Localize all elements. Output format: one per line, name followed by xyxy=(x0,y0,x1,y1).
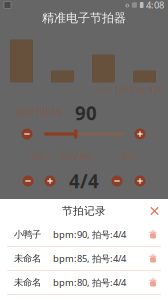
staticText: 小节: 109 xyxy=(94,85,129,95)
staticText: bpm:85, 拍号:4/4 xyxy=(53,252,126,265)
button[interactable]: Increase xyxy=(134,128,145,139)
staticText: 精准电子节拍器 xyxy=(42,11,126,25)
button[interactable]: Decrease xyxy=(22,175,33,186)
button[interactable]: 未命名 xyxy=(0,247,168,270)
staticText: 4:08 xyxy=(146,0,164,11)
staticText: 90 xyxy=(75,101,97,125)
staticText: 小鸭子 xyxy=(14,229,41,240)
button[interactable]: 未命名 xyxy=(0,271,168,294)
staticText: 节拍: 438 xyxy=(128,85,163,95)
staticText: 节拍记录 xyxy=(62,204,106,217)
staticText: 节拍 xyxy=(29,152,45,162)
button[interactable]: Close xyxy=(150,206,159,215)
button[interactable]: Decrease xyxy=(21,128,32,139)
button[interactable]: Increase xyxy=(44,175,55,186)
button[interactable]: 小鸭子 xyxy=(0,223,168,246)
staticText: bpm:90, 拍号:4/4 xyxy=(53,228,126,241)
staticText: ‹› xyxy=(125,0,129,10)
staticText: 节拍/音符 xyxy=(59,152,94,162)
staticText: 4/4 xyxy=(69,169,99,193)
button[interactable]: Increase xyxy=(134,175,145,186)
staticText: 音符 xyxy=(121,152,137,162)
staticText: bpm:80, 拍号:4/4 xyxy=(53,276,126,289)
staticText: 未命名 xyxy=(14,253,41,264)
button[interactable]: Decrease xyxy=(111,175,122,186)
staticText: 速度 (BPM)： xyxy=(16,106,71,118)
staticText: 未命名 xyxy=(14,277,41,288)
